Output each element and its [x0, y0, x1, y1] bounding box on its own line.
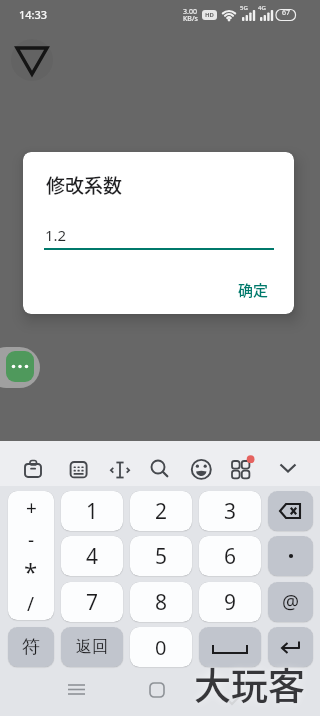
staticText: 大玩客 — [194, 657, 305, 711]
staticText: HD — [205, 11, 214, 19]
staticText: 4 — [86, 542, 99, 571]
staticText: 返回 — [76, 637, 108, 657]
staticText: 5 — [155, 542, 168, 571]
staticText: 确定 — [238, 279, 269, 301]
staticText: 修改系数 — [46, 171, 123, 199]
staticText: @ — [282, 589, 300, 615]
staticText: 2 — [155, 497, 168, 526]
button[interactable]: 1 — [61, 491, 123, 531]
button[interactable]: @ — [268, 582, 313, 622]
button[interactable] — [60, 447, 96, 483]
button[interactable] — [199, 627, 261, 667]
button[interactable]: 6 — [199, 536, 261, 576]
button[interactable]: 返回 — [61, 627, 123, 667]
staticText: 6 — [224, 542, 237, 571]
button[interactable]: 0 — [130, 627, 192, 667]
staticText: 1 — [86, 497, 99, 526]
staticText: 7 — [86, 588, 99, 617]
staticText: + — [26, 495, 37, 521]
button[interactable] — [10, 40, 54, 82]
staticText: 3.00 — [183, 7, 197, 17]
button[interactable] — [6, 351, 34, 382]
button[interactable]: 8 — [130, 582, 192, 622]
staticText: 5G — [240, 4, 248, 12]
button[interactable] — [268, 627, 313, 667]
button[interactable] — [183, 447, 219, 483]
button[interactable]: 符 — [8, 627, 54, 667]
staticText: * — [24, 555, 38, 588]
button[interactable]: 9 — [199, 582, 261, 622]
staticText: / — [27, 591, 35, 617]
button[interactable] — [223, 447, 259, 483]
staticText: 符 — [22, 636, 40, 659]
button[interactable] — [268, 536, 313, 576]
staticText: 1.2 — [45, 225, 67, 245]
button[interactable] — [102, 447, 138, 483]
button[interactable]: 5 — [130, 536, 192, 576]
staticText: 4G — [258, 4, 266, 12]
button[interactable]: 3 — [199, 491, 261, 531]
button[interactable] — [44, 214, 274, 250]
staticText: 0 — [155, 634, 167, 661]
staticText: 14:33 — [19, 7, 48, 22]
button[interactable]: 7 — [61, 582, 123, 622]
button[interactable]: 2 — [130, 491, 192, 531]
button[interactable] — [15, 447, 51, 483]
button[interactable]: 确定 — [223, 273, 283, 307]
staticText: 9 — [224, 588, 237, 617]
staticText: 3 — [224, 497, 237, 526]
staticText: KB/s — [183, 14, 198, 24]
staticText: 8 — [155, 588, 168, 617]
button[interactable] — [270, 447, 306, 483]
button[interactable]: + — [8, 491, 54, 620]
button[interactable] — [140, 447, 176, 483]
staticText: 67 — [282, 8, 291, 18]
button[interactable] — [268, 491, 313, 531]
button[interactable]: 4 — [61, 536, 123, 576]
staticText: - — [28, 527, 35, 553]
